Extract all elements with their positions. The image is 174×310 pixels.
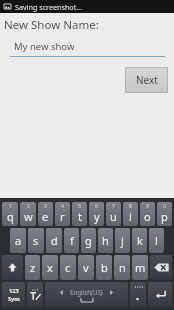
- button[interactable]: x: [42, 255, 58, 280]
- staticText: a: [15, 233, 22, 248]
- button[interactable]: q: [2, 202, 18, 226]
- button[interactable]: m: [132, 255, 148, 280]
- button[interactable]: h: [98, 228, 113, 253]
- button[interactable]: u: [106, 202, 121, 226]
- button[interactable]: v: [78, 255, 94, 280]
- button[interactable]: f: [64, 228, 79, 253]
- staticText: x: [47, 260, 53, 275]
- button[interactable]: Enter: [148, 282, 172, 307]
- staticText: o: [144, 209, 151, 224]
- staticText: k: [137, 233, 143, 248]
- button[interactable]: Space: [45, 282, 128, 307]
- button[interactable]: b: [96, 255, 112, 280]
- staticText: Next: [136, 73, 158, 87]
- staticText: i: [129, 209, 132, 224]
- staticText: h: [102, 233, 109, 248]
- button[interactable]: c: [60, 255, 76, 280]
- button[interactable]: Period: [130, 282, 146, 307]
- staticText: y: [94, 209, 100, 224]
- staticText: 6: [95, 202, 98, 209]
- staticText: p: [161, 209, 168, 224]
- staticText: b: [101, 260, 108, 275]
- staticText: 0: [163, 202, 166, 209]
- staticText: 123: [9, 287, 19, 295]
- staticText: New Show Name:: [4, 17, 99, 33]
- staticText: 4: [61, 202, 64, 209]
- staticText: 5: [78, 202, 81, 209]
- button[interactable]: Next: [125, 67, 168, 93]
- button[interactable]: k: [132, 228, 147, 253]
- button[interactable]: y: [89, 202, 104, 226]
- button[interactable]: Shift: [2, 255, 23, 280]
- staticText: c: [65, 260, 71, 275]
- button[interactable]: s: [28, 228, 44, 253]
- button[interactable]: p: [157, 202, 172, 226]
- button[interactable]: a: [10, 228, 26, 253]
- staticText: u: [110, 209, 117, 224]
- button[interactable]: z: [25, 255, 40, 280]
- staticText: 7: [112, 202, 115, 209]
- staticText: Saving screenshot...: [15, 2, 83, 12]
- staticText: My new show: [14, 40, 75, 53]
- staticText: m: [135, 260, 146, 275]
- button[interactable]: w: [20, 202, 36, 226]
- button[interactable]: e: [38, 202, 53, 226]
- button[interactable]: n: [114, 255, 130, 280]
- staticText: v: [83, 260, 89, 275]
- staticText: f: [70, 233, 74, 248]
- button[interactable]: Handwriting: [27, 282, 43, 307]
- staticText: s: [33, 233, 39, 248]
- button[interactable]: i: [123, 202, 138, 226]
- staticText: English(US): [70, 288, 103, 296]
- staticText: n: [119, 260, 126, 275]
- staticText: r: [60, 209, 65, 224]
- staticText: j: [121, 233, 124, 248]
- button[interactable]: g: [81, 228, 96, 253]
- staticText: d: [51, 233, 58, 248]
- staticText: g: [85, 233, 92, 248]
- other: Screenshot: [3, 2, 12, 11]
- staticText: z: [30, 260, 36, 275]
- staticText: 9: [146, 202, 149, 209]
- staticText: Sym: [8, 295, 20, 303]
- button[interactable]: j: [115, 228, 130, 253]
- staticText: q: [7, 209, 14, 224]
- button[interactable]: t: [72, 202, 87, 226]
- button[interactable]: d: [46, 228, 62, 253]
- staticText: 8: [129, 202, 132, 209]
- staticText: e: [42, 209, 49, 224]
- button[interactable]: o: [140, 202, 155, 226]
- staticText: t: [78, 209, 82, 224]
- button[interactable]: l: [149, 228, 164, 253]
- button[interactable]: Delete: [150, 255, 172, 280]
- staticText: l: [155, 233, 158, 248]
- staticText: 2: [27, 202, 30, 209]
- staticText: w: [24, 209, 33, 224]
- staticText: 1: [9, 202, 12, 209]
- staticText: 3: [44, 202, 47, 209]
- button[interactable]: r: [55, 202, 70, 226]
- button[interactable]: Symbols: [2, 282, 25, 307]
